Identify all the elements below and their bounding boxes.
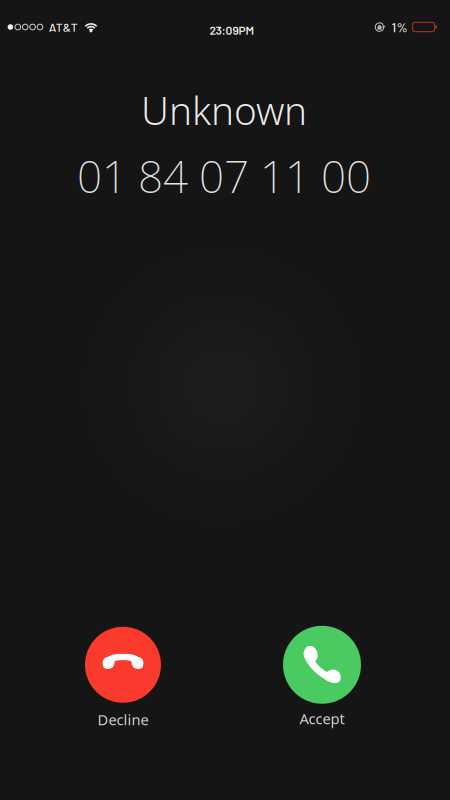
staticText: Unknown <box>141 84 307 136</box>
staticText: Decline <box>97 710 148 729</box>
staticText: 23:09PM <box>209 23 254 37</box>
staticText: 01 84 07 11 00 <box>77 147 371 205</box>
button[interactable]: Decline <box>85 627 161 729</box>
staticText: Accept <box>299 709 344 728</box>
staticText: AT&T <box>49 20 78 34</box>
staticText: 1% <box>392 19 408 35</box>
button[interactable]: Accept <box>283 626 361 730</box>
